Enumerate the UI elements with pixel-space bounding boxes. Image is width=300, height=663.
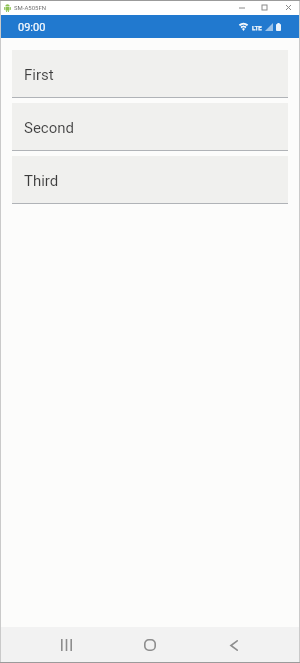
button[interactable]: Minimize: [231, 0, 253, 15]
button[interactable]: First: [12, 50, 288, 97]
staticText: 09:00: [18, 21, 46, 34]
button[interactable]: Recents: [38, 627, 94, 663]
button[interactable]: Second: [12, 103, 288, 150]
staticText: SM-A505FN: [14, 4, 47, 11]
staticText: LTE: [252, 24, 262, 31]
button[interactable]: Back: [206, 627, 262, 663]
staticText: Second: [24, 119, 75, 137]
button[interactable]: Close: [276, 0, 300, 15]
button[interactable]: Maximize: [253, 0, 276, 15]
button[interactable]: Home: [122, 627, 178, 663]
staticText: First: [24, 66, 54, 84]
button[interactable]: Third: [12, 156, 288, 203]
staticText: Third: [24, 172, 59, 190]
